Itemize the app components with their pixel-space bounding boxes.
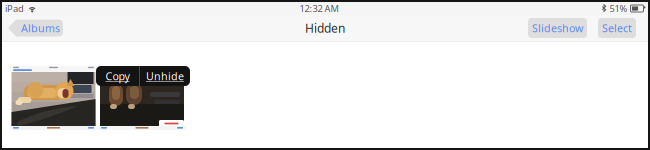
button[interactable]: Photo 1 bbox=[10, 66, 97, 130]
staticText: Select bbox=[602, 21, 632, 35]
staticText: 51% bbox=[609, 2, 627, 15]
staticText: 12:32 AM bbox=[299, 2, 338, 15]
button[interactable]: Select bbox=[598, 18, 636, 38]
button[interactable]: Photo 2, selected bbox=[98, 66, 186, 130]
button[interactable]: Slideshow bbox=[528, 18, 587, 38]
staticText: Hidden bbox=[305, 20, 345, 36]
staticText: Slideshow bbox=[532, 21, 583, 35]
button[interactable]: Copy bbox=[96, 66, 139, 86]
button[interactable]: Albums bbox=[8, 19, 63, 36]
staticText: Copy bbox=[105, 69, 129, 83]
button[interactable]: Unhide bbox=[140, 66, 190, 86]
staticText: Unhide bbox=[146, 69, 184, 83]
staticText: Albums bbox=[21, 21, 60, 35]
staticText: iPad bbox=[5, 2, 24, 15]
